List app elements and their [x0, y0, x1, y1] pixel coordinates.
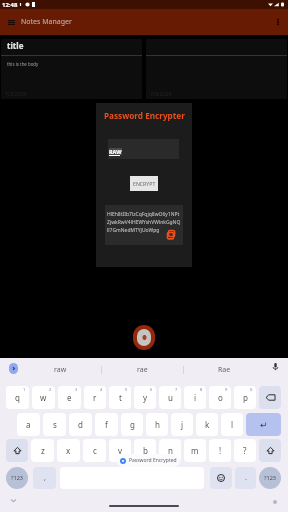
button[interactable]: ?	[234, 439, 256, 462]
button[interactable]: Copy	[167, 230, 175, 238]
button[interactable]: !	[209, 439, 231, 462]
staticText: 7/3/2024	[150, 90, 172, 97]
staticText: u	[168, 392, 173, 403]
button[interactable]: Menu	[3, 14, 19, 30]
button[interactable]: rae	[101, 358, 183, 386]
staticText: c	[93, 445, 97, 456]
staticText: k	[205, 419, 210, 430]
button[interactable]: RAW	[108, 139, 179, 159]
staticText: RAW	[109, 148, 122, 155]
button[interactable]: o	[209, 386, 231, 409]
button[interactable]: backspace	[259, 386, 281, 409]
staticText: t	[119, 392, 122, 403]
staticText: 6	[150, 387, 153, 392]
button[interactable]: w	[32, 386, 55, 409]
button[interactable]: enter	[246, 413, 281, 436]
button[interactable]: l	[221, 413, 243, 436]
button[interactable]: f	[95, 413, 118, 436]
button[interactable]: d	[69, 413, 92, 436]
button[interactable]: t	[109, 386, 131, 409]
button[interactable]: More suggestions	[9, 363, 18, 374]
staticText: ↵	[260, 420, 268, 430]
staticText: n	[168, 445, 173, 456]
button[interactable]: ?123	[259, 467, 281, 489]
button[interactable]: 7/3/2024	[146, 39, 287, 99]
staticText: 7	[175, 387, 178, 392]
button[interactable]: title	[1, 39, 142, 99]
staticText: ?123	[264, 474, 277, 482]
button[interactable]: ENCRYPT	[130, 176, 158, 191]
staticText: raw	[54, 365, 67, 375]
staticText: d	[78, 419, 83, 430]
button[interactable]: q	[6, 386, 29, 409]
button[interactable]: u	[159, 386, 181, 409]
staticText: 1	[23, 387, 26, 392]
button[interactable]: Emoji	[210, 467, 232, 489]
staticText: 12:48	[2, 1, 18, 9]
staticText: 2	[49, 387, 52, 392]
button[interactable]: .	[235, 467, 256, 489]
button[interactable]: z	[31, 439, 54, 462]
staticText: j	[181, 419, 184, 430]
button[interactable]: y	[134, 386, 156, 409]
staticText: r	[93, 392, 97, 403]
staticText: ?	[243, 445, 247, 456]
staticText: e	[67, 392, 72, 403]
staticText: q	[15, 392, 20, 403]
button[interactable]: c	[83, 439, 106, 462]
button[interactable]: Add note	[133, 325, 155, 350]
button[interactable]: h	[146, 413, 168, 436]
button[interactable]: m	[184, 439, 206, 462]
button[interactable]: x	[57, 439, 80, 462]
button[interactable]: k	[196, 413, 218, 436]
button[interactable]: ,	[33, 467, 56, 489]
button[interactable]: e	[58, 386, 81, 409]
staticText: s	[53, 419, 57, 430]
staticText: 0	[250, 387, 253, 392]
button[interactable]: s	[43, 413, 66, 436]
button[interactable]: n	[159, 439, 181, 462]
staticText: b	[143, 445, 148, 456]
staticText: ?123	[11, 474, 24, 482]
staticText: this is the body	[7, 61, 39, 67]
button[interactable]: b	[134, 439, 156, 462]
staticText: 9	[225, 387, 228, 392]
staticText: f	[105, 419, 108, 430]
staticText: a	[26, 419, 31, 430]
button[interactable]: shift	[6, 439, 28, 462]
staticText: h	[155, 419, 160, 430]
staticText: m	[191, 445, 199, 456]
button[interactable]: raw	[20, 358, 101, 386]
button[interactable]: r	[84, 386, 106, 409]
staticText: x	[66, 445, 71, 456]
staticText: g	[130, 419, 135, 430]
staticText: p	[243, 392, 248, 403]
button[interactable]: More options	[270, 14, 286, 30]
staticText: Password Encrypter	[104, 110, 185, 121]
button[interactable]: a	[17, 413, 40, 436]
staticText: 7/3/2024	[5, 90, 27, 97]
button[interactable]: g	[121, 413, 143, 436]
staticText: 5	[125, 387, 128, 392]
staticText: HlEh8tIIb7lzCqFqjq8wO6y1NPtZjwkRwV4lHEWY…	[107, 211, 181, 234]
staticText: rae	[137, 365, 148, 375]
staticText: i	[194, 392, 197, 403]
button[interactable]: shift	[259, 439, 281, 462]
staticText: 8	[200, 387, 203, 392]
button[interactable]: i	[184, 386, 206, 409]
staticText: !	[219, 445, 222, 456]
staticText: l	[231, 419, 234, 430]
button[interactable]: Voice input	[269, 360, 281, 372]
button[interactable]: Rae	[183, 358, 265, 386]
staticText: v	[118, 445, 123, 456]
staticText: Notes Manager	[21, 17, 72, 27]
staticText: 4	[100, 387, 103, 392]
button[interactable]: v	[109, 439, 131, 462]
button[interactable]: ?123	[6, 467, 28, 489]
staticText: .	[245, 473, 247, 483]
button[interactable]: p	[234, 386, 256, 409]
staticText: w	[40, 392, 47, 403]
staticText: 3	[75, 387, 78, 392]
button[interactable]: j	[171, 413, 193, 436]
